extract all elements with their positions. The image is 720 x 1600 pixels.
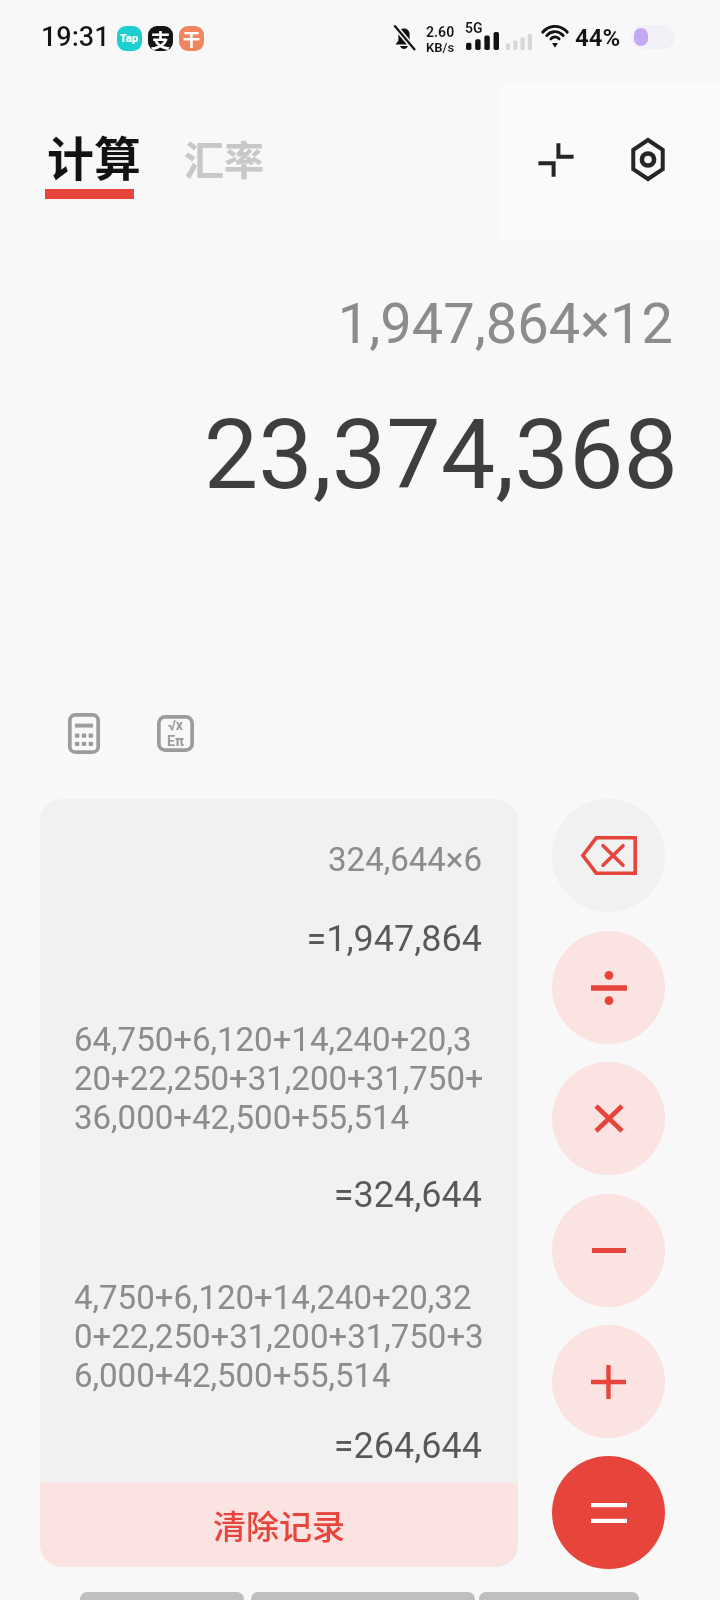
staticText: 64,750+6,120+14,240+20,3 20+22,250+31,20… xyxy=(74,1020,482,1137)
button[interactable]: Multiply xyxy=(552,1062,665,1175)
staticText: 44% xyxy=(575,24,621,52)
button[interactable]: Divide xyxy=(552,931,665,1044)
staticText: 324,644×6 xyxy=(74,840,482,879)
staticText: 1,947,864×12 xyxy=(0,291,673,357)
staticText: Tap xyxy=(120,32,139,45)
button[interactable]: Settings xyxy=(598,109,698,209)
button[interactable]: Equals xyxy=(552,1456,665,1569)
button[interactable]: 计算 xyxy=(47,121,141,199)
staticText: =264,644 xyxy=(74,1425,482,1467)
button[interactable]: Key 9 xyxy=(479,1592,639,1600)
button[interactable]: Add xyxy=(552,1325,665,1438)
staticText: 5G xyxy=(465,20,483,36)
button[interactable]: Scientific calculator xyxy=(145,703,205,763)
button[interactable]: Backspace xyxy=(552,799,665,912)
staticText: 4,750+6,120+14,240+20,32 0+22,250+31,200… xyxy=(74,1278,482,1395)
staticText: 支 xyxy=(151,26,171,51)
staticText: √x xyxy=(168,717,183,733)
button[interactable]: 清除记录 xyxy=(40,1483,518,1567)
staticText: =1,947,864 xyxy=(74,918,482,960)
staticText: 19:31 xyxy=(41,21,110,53)
staticText: 2.60 xyxy=(426,24,455,40)
staticText: 计算 xyxy=(47,121,141,189)
button[interactable]: Key 7 xyxy=(80,1592,244,1600)
button[interactable]: Subtract xyxy=(552,1194,665,1307)
staticText: Eπ xyxy=(167,733,184,749)
button[interactable]: Basic calculator xyxy=(54,703,114,763)
staticText: 23,374,368 xyxy=(0,398,678,512)
staticText: 干 xyxy=(183,26,200,51)
button[interactable]: Key 8 xyxy=(251,1592,475,1600)
staticText: =324,644 xyxy=(74,1174,482,1216)
button[interactable]: 汇率 xyxy=(184,129,264,187)
staticText: 汇率 xyxy=(184,129,264,187)
button[interactable]: Collapse keypad xyxy=(506,110,606,210)
staticText: 清除记录 xyxy=(213,1501,345,1549)
staticText: KB/s xyxy=(426,40,455,55)
